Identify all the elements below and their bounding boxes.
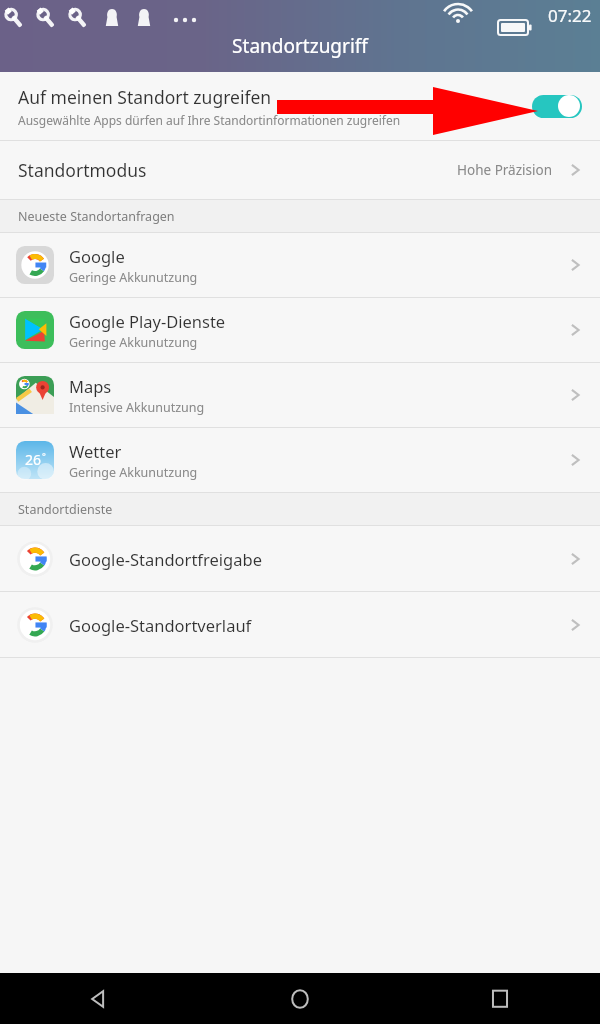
button[interactable]: Google-Standortfreigabe [0, 526, 600, 591]
button[interactable]: Auf meinen Standort zugreifen [0, 72, 600, 140]
staticText: Auf meinen Standort zugreifen [18, 85, 272, 109]
button[interactable]: Home [200, 973, 400, 1024]
staticText: Standortmodus [18, 158, 457, 182]
staticText: Google-Standortverlauf [69, 614, 564, 636]
staticText: Ausgewählte Apps dürfen auf Ihre Standor… [18, 112, 401, 128]
button[interactable]: Standortmodus [0, 141, 600, 199]
button[interactable]: Google Play-Dienste [0, 298, 600, 362]
staticText: ° [42, 450, 46, 462]
staticText: Google Play-Dienste [69, 310, 226, 332]
staticText: Neueste Standortanfragen [18, 208, 175, 225]
staticText: Wetter [69, 440, 122, 462]
staticText: Standortzugriff [232, 33, 368, 59]
button[interactable]: Google [0, 233, 600, 297]
button[interactable]: Recent apps [400, 973, 600, 1024]
staticText: 26 [25, 450, 42, 469]
staticText: Geringe Akkunutzung [69, 334, 198, 351]
staticText: Google-Standortfreigabe [69, 548, 564, 570]
staticText: Geringe Akkunutzung [69, 464, 198, 481]
button[interactable]: Google-Standortverlauf [0, 592, 600, 657]
staticText: Intensive Akkunutzung [69, 399, 205, 416]
button[interactable]: Back [0, 973, 200, 1024]
staticText: Geringe Akkunutzung [69, 269, 198, 286]
button[interactable]: Maps [0, 363, 600, 427]
staticText: 07:22 [548, 4, 592, 27]
button[interactable]: 26 [0, 428, 600, 492]
staticText: Maps [69, 375, 112, 397]
staticText: Hohe Präzision [457, 161, 552, 179]
staticText: Standortdienste [18, 501, 113, 518]
button[interactable]: Standortzugriff ein/aus [532, 94, 582, 118]
staticText: Google [69, 245, 125, 267]
